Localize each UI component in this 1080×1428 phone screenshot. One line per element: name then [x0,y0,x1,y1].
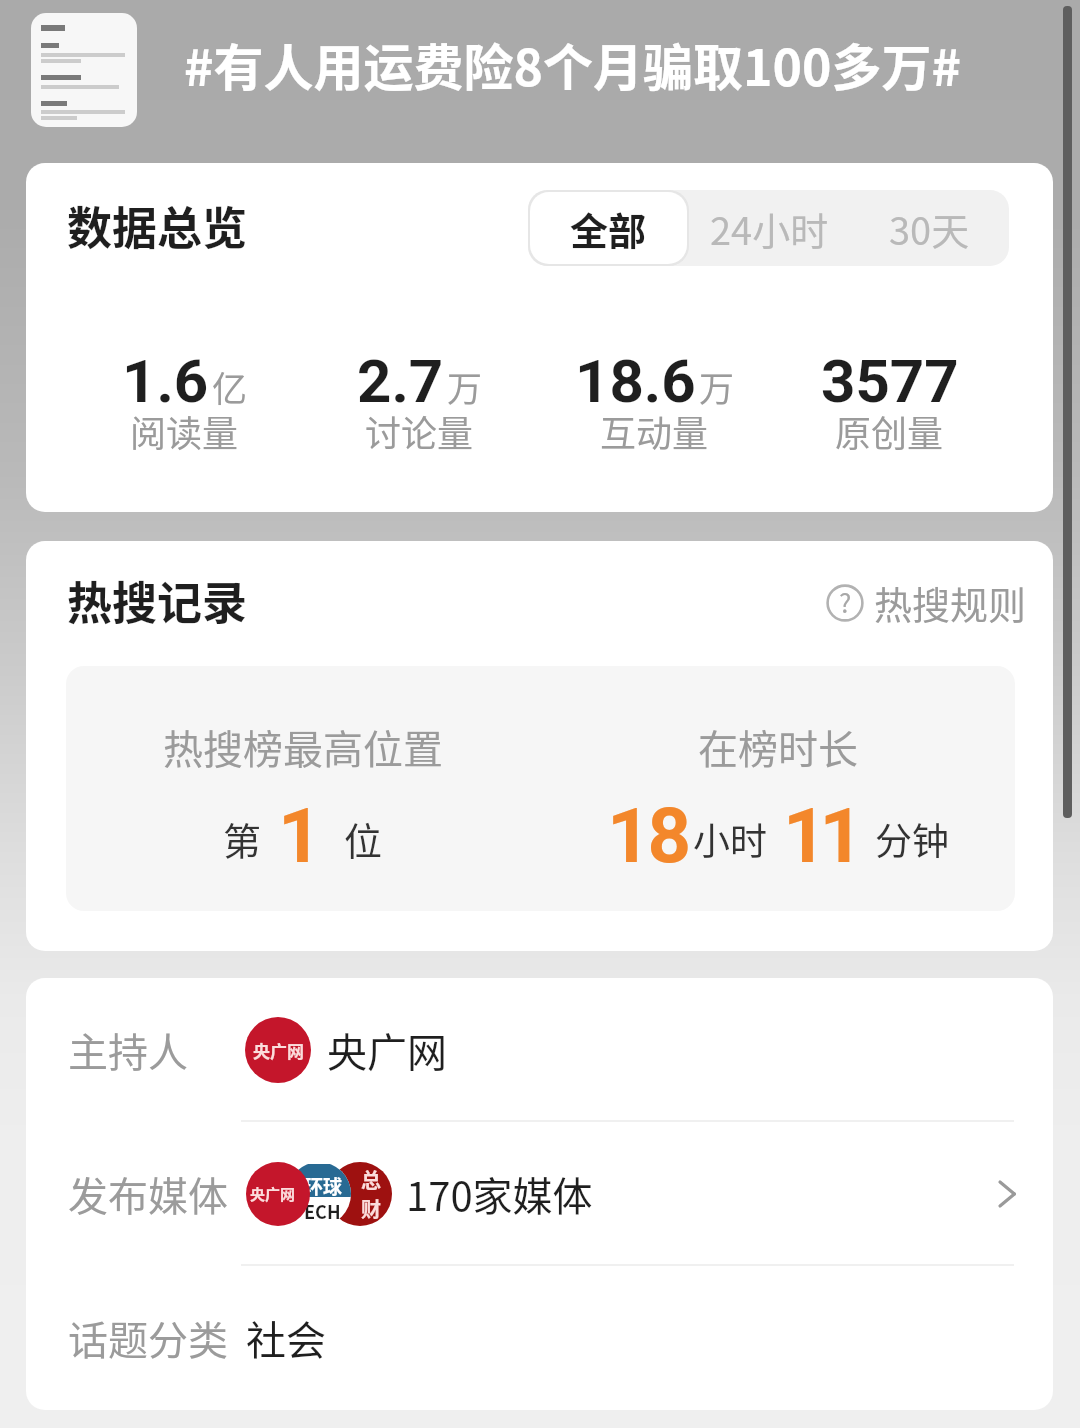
staticText: ? [839,583,852,621]
staticText: 话题分类 [68,1309,228,1367]
staticText: 11 [783,791,857,880]
staticText: 30天 [889,201,970,256]
staticText: 讨论量 [365,405,474,457]
staticText: 央广网 [253,1038,304,1063]
staticText: 18.6 [575,346,696,416]
staticText: 热搜规则 [874,575,1027,630]
staticText: 热搜记录 [67,568,248,633]
staticText: 万 [699,361,735,412]
staticText: 财 [361,1194,381,1223]
staticText: 万 [447,361,483,412]
staticText: 原创量 [835,405,944,457]
staticText: 主持人 [68,1021,188,1079]
staticText: 数据总览 [67,193,248,258]
staticText: 央广网 [327,1021,447,1079]
staticText: 发布媒体 [68,1165,228,1223]
button[interactable]: 1.6 [67,336,302,458]
button[interactable]: 18.6 [537,336,772,458]
staticText: 央广网 [250,1183,296,1205]
button[interactable]: 发布媒体 [26,1122,1053,1266]
button[interactable]: Article preview [31,13,137,127]
staticText: 3577 [821,346,959,416]
staticText: 18 [607,791,689,880]
staticText: 全部 [570,201,647,256]
button[interactable]: ? [826,575,1027,630]
button[interactable]: 3577 [772,336,1007,458]
staticText: 24小时 [710,201,829,256]
staticText: 1 [278,791,322,880]
other: View all media [991,1179,1021,1209]
staticText: 1.6 [122,346,209,416]
button[interactable]: 全部 [530,192,687,264]
staticText: 总 [361,1165,381,1194]
staticText: 亿 [212,361,248,412]
staticText: 阅读量 [130,405,239,457]
staticText: 小时 [693,812,767,866]
button[interactable]: 30天 [849,190,1009,266]
button[interactable]: 话题分类 [26,1266,1053,1410]
staticText: 互动量 [600,405,709,457]
staticText: 分钟 [875,812,949,866]
staticText: 170家媒体 [406,1165,593,1223]
staticText: 环球 [304,1172,343,1200]
staticText: 热搜榜最高位置 [163,718,443,776]
staticText: ECH [304,1198,341,1224]
staticText: 2.7 [357,346,444,416]
staticText: 在榜时长 [698,718,858,776]
staticText: 社会 [246,1309,326,1367]
staticText: #有人用运费险8个月骗取100多万# [184,28,961,100]
staticText: 位 [344,811,383,866]
button[interactable]: 24小时 [689,190,849,266]
button[interactable]: 主持人 [26,978,1053,1122]
button[interactable]: 2.7 [302,336,537,458]
staticText: 第 [223,811,262,866]
